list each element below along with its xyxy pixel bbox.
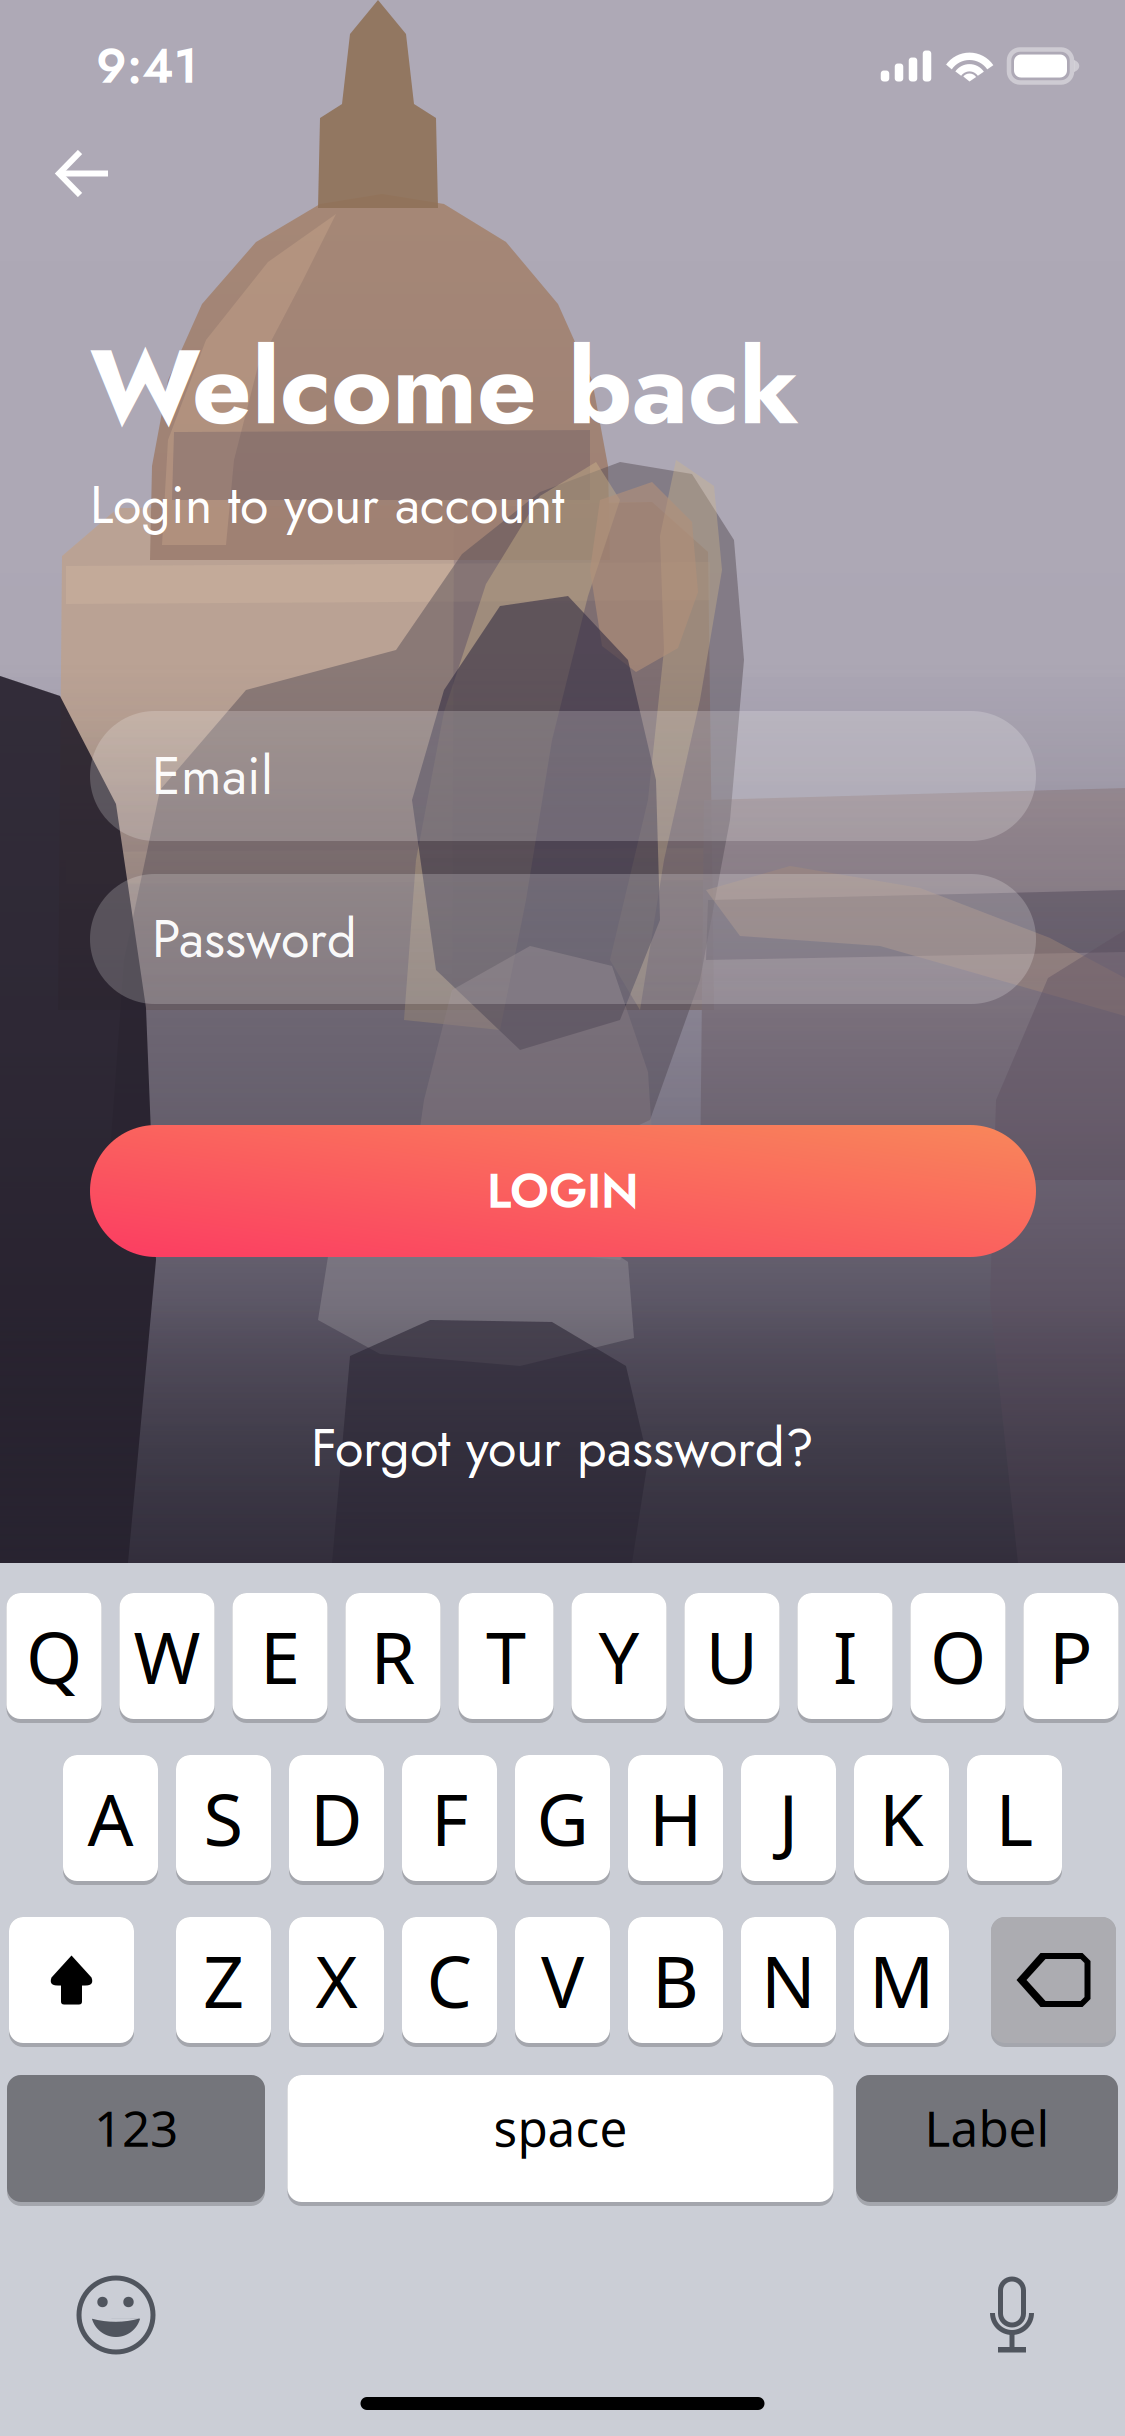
- button[interactable]: Y: [571, 1593, 666, 1723]
- staticText: X: [315, 1932, 357, 2028]
- button[interactable]: G: [515, 1755, 610, 1885]
- button[interactable]: V: [515, 1917, 610, 2047]
- button[interactable]: Emoji: [75, 2274, 157, 2356]
- staticText: L: [995, 1770, 1033, 1866]
- staticText: W: [133, 1608, 200, 1704]
- staticText: R: [370, 1608, 415, 1704]
- staticText: M: [869, 1932, 934, 2028]
- staticText: Z: [203, 1932, 244, 2028]
- staticText: LOGIN: [487, 1156, 639, 1226]
- button[interactable]: LOGIN: [90, 1125, 1036, 1257]
- staticText: Forgot your password?: [311, 1410, 814, 1485]
- staticText: P: [1049, 1608, 1093, 1704]
- button[interactable]: B: [628, 1917, 723, 2047]
- staticText: F: [431, 1770, 468, 1866]
- button[interactable]: W: [119, 1593, 214, 1723]
- staticText: Email: [152, 738, 273, 813]
- staticText: H: [649, 1770, 702, 1866]
- button[interactable]: 123: [7, 2075, 265, 2206]
- button[interactable]: Label: [856, 2075, 1118, 2206]
- staticText: Q: [26, 1608, 82, 1704]
- button[interactable]: H: [628, 1755, 723, 1885]
- button[interactable]: O: [910, 1593, 1005, 1723]
- button[interactable]: L: [967, 1755, 1062, 1885]
- button[interactable]: N: [741, 1917, 836, 2047]
- button[interactable]: Shift: [9, 1917, 134, 2047]
- button[interactable]: Z: [176, 1917, 271, 2047]
- button[interactable]: Password: [90, 874, 1036, 1004]
- button[interactable]: Forgot your password?: [0, 1400, 1125, 1496]
- staticText: O: [930, 1608, 986, 1704]
- staticText: G: [536, 1770, 588, 1866]
- staticText: space: [493, 2095, 627, 2160]
- staticText: N: [761, 1932, 816, 2028]
- staticText: S: [203, 1770, 243, 1866]
- button[interactable]: M: [854, 1917, 949, 2047]
- button[interactable]: S: [176, 1755, 271, 1885]
- staticText: D: [310, 1770, 363, 1866]
- button[interactable]: I: [797, 1593, 892, 1723]
- staticText: T: [486, 1608, 526, 1704]
- staticText: E: [260, 1608, 300, 1704]
- button[interactable]: space: [287, 2075, 833, 2206]
- staticText: 123: [94, 2095, 178, 2160]
- staticText: B: [652, 1932, 699, 2028]
- button[interactable]: C: [402, 1917, 497, 2047]
- button[interactable]: Q: [6, 1593, 101, 1723]
- staticText: I: [833, 1608, 857, 1704]
- button[interactable]: A: [63, 1755, 158, 1885]
- staticText: Welcome back: [90, 312, 799, 462]
- staticText: 9:41: [96, 31, 198, 101]
- button[interactable]: E: [232, 1593, 327, 1723]
- staticText: K: [879, 1770, 924, 1866]
- staticText: Y: [598, 1608, 639, 1704]
- staticText: J: [778, 1770, 798, 1866]
- staticText: A: [87, 1770, 133, 1866]
- button[interactable]: F: [402, 1755, 497, 1885]
- button[interactable]: D: [289, 1755, 384, 1885]
- button[interactable]: Dictation: [990, 2274, 1034, 2353]
- button[interactable]: K: [854, 1755, 949, 1885]
- button[interactable]: Back: [0, 127, 151, 220]
- staticText: U: [705, 1608, 758, 1704]
- button[interactable]: X: [289, 1917, 384, 2047]
- staticText: Password: [152, 901, 357, 976]
- staticText: C: [426, 1932, 472, 2028]
- button[interactable]: T: [458, 1593, 553, 1723]
- button[interactable]: Delete: [991, 1917, 1116, 2047]
- staticText: V: [541, 1932, 584, 2028]
- staticText: Label: [924, 2095, 1049, 2160]
- button[interactable]: Email: [90, 711, 1036, 841]
- staticText: Login to your account: [90, 467, 564, 542]
- button[interactable]: R: [345, 1593, 440, 1723]
- button[interactable]: U: [684, 1593, 779, 1723]
- button[interactable]: J: [741, 1755, 836, 1885]
- button[interactable]: P: [1023, 1593, 1118, 1723]
